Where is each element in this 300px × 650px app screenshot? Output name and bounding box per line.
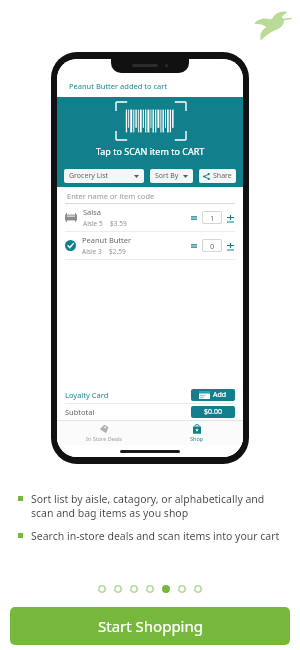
button[interactable]: Add	[191, 389, 235, 401]
button[interactable]: In Store Deals	[57, 421, 150, 445]
staticText: Enter name or item code	[67, 191, 155, 201]
staticText: Sort By	[155, 171, 179, 181]
staticText: Subtotal	[65, 407, 95, 417]
button[interactable]: Decrease	[189, 241, 199, 251]
staticText: Loyalty Card	[65, 390, 109, 400]
staticText: 1	[210, 213, 215, 223]
staticText: Salsa	[83, 207, 102, 217]
button[interactable]: Sort By	[150, 169, 193, 183]
button[interactable]: Salsa	[57, 204, 243, 231]
staticText: Sort list by aisle, catagory, or alphabe…	[31, 492, 282, 520]
staticText: Peanut Butter	[82, 235, 132, 245]
button[interactable]: Share	[199, 169, 236, 183]
staticText: Add	[213, 390, 227, 400]
button[interactable]: Decrease	[189, 213, 199, 223]
staticText: Start Shopping	[98, 616, 203, 636]
staticText: In Store Deals	[86, 435, 122, 442]
staticText: Share	[213, 171, 232, 181]
button[interactable]: $0.00	[191, 406, 235, 418]
staticText: $0.00	[204, 407, 222, 417]
button[interactable]: 0	[202, 239, 222, 252]
button[interactable]: Tap to scan item to cart	[57, 97, 243, 165]
button[interactable]: Shop	[150, 421, 243, 445]
staticText: Aisle 3	[82, 247, 102, 256]
staticText: 0	[210, 241, 215, 251]
button[interactable]: Increase	[225, 241, 235, 251]
button[interactable]: Peanut Butter	[57, 232, 243, 259]
button[interactable]: Grocery List	[64, 169, 144, 183]
button[interactable]: Enter name or item code	[57, 187, 243, 204]
button[interactable]: Start Shopping	[10, 607, 290, 645]
staticText: Shop	[190, 435, 204, 442]
staticText: Peanut Butter added to cart	[69, 81, 168, 91]
staticText: Tap to SCAN item to CART	[96, 145, 205, 157]
staticText: Grocery List	[69, 171, 109, 181]
button[interactable]: 1	[202, 211, 222, 224]
staticText: $3.59	[110, 219, 127, 228]
staticText: Search in-store deals and scan items int…	[31, 529, 280, 543]
staticText: $2.59	[109, 247, 126, 256]
button[interactable]: Increase	[225, 213, 235, 223]
staticText: Aisle 5	[83, 219, 103, 228]
